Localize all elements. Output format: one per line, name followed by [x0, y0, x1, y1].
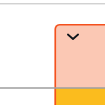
- button[interactable]: Expanded card: [0, 0, 105, 105]
